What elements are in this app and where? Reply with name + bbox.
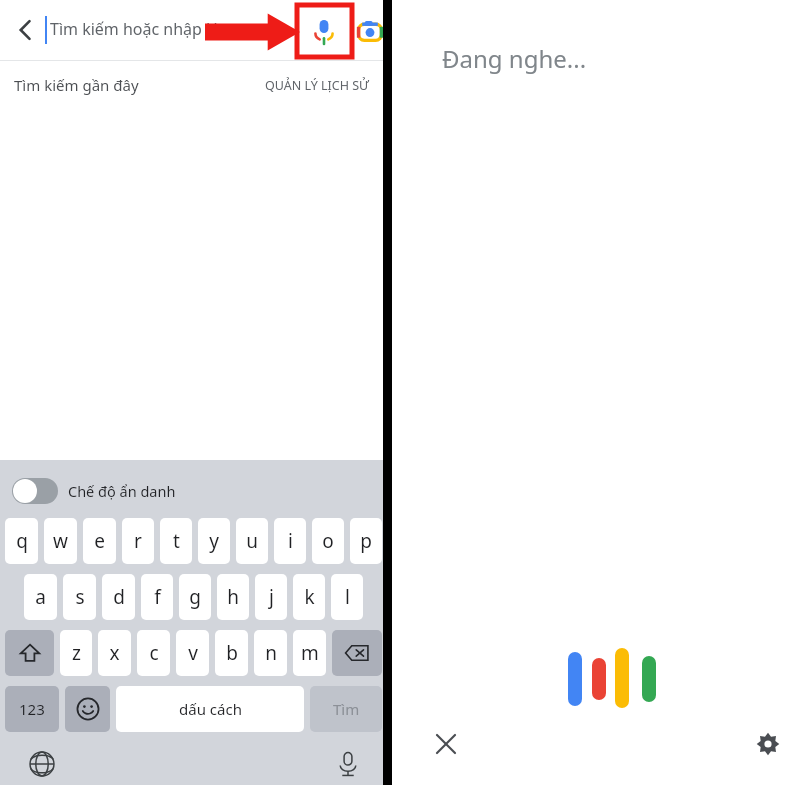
button[interactable]: 123 <box>5 686 59 732</box>
button[interactable]: b <box>215 630 248 676</box>
staticText: Chế độ ẩn danh <box>68 481 176 501</box>
button[interactable]: Backspace <box>332 630 382 676</box>
staticText: j <box>269 584 274 610</box>
staticText: q <box>16 528 28 554</box>
button[interactable]: h <box>217 574 249 620</box>
button[interactable]: Close <box>426 724 466 764</box>
button[interactable]: c <box>137 630 170 676</box>
button[interactable]: Back <box>6 10 46 50</box>
staticText: 123 <box>19 699 45 719</box>
button[interactable]: q <box>5 518 38 564</box>
button[interactable]: z <box>60 630 92 676</box>
button[interactable]: Shift <box>5 630 54 676</box>
button[interactable]: m <box>293 630 326 676</box>
button[interactable]: n <box>254 630 287 676</box>
staticText: z <box>72 640 81 666</box>
staticText: m <box>301 640 319 666</box>
staticText: u <box>246 528 258 554</box>
button[interactable]: dấu cách <box>116 686 304 732</box>
button[interactable]: Tìm <box>310 686 382 732</box>
staticText: t <box>173 528 180 554</box>
staticText: Tìm <box>333 699 360 719</box>
staticText: x <box>109 640 120 666</box>
staticText: w <box>53 528 68 554</box>
staticText: Tìm kiếm gần đây <box>14 75 139 95</box>
staticText: b <box>226 640 238 666</box>
button[interactable]: r <box>122 518 154 564</box>
button[interactable]: x <box>98 630 131 676</box>
staticText: l <box>345 584 350 610</box>
staticText: f <box>154 584 161 610</box>
button[interactable]: Emoji <box>65 686 110 732</box>
staticText: c <box>149 640 159 666</box>
staticText: n <box>265 640 277 666</box>
staticText: v <box>188 640 198 666</box>
button[interactable]: Chế độ ẩn danh <box>12 474 176 508</box>
staticText: r <box>134 528 142 554</box>
staticText: k <box>304 584 315 610</box>
button[interactable]: w <box>44 518 77 564</box>
staticText: h <box>227 584 239 610</box>
button[interactable]: t <box>160 518 192 564</box>
button[interactable]: Voice search <box>302 10 346 54</box>
button[interactable]: e <box>83 518 116 564</box>
button[interactable]: u <box>236 518 268 564</box>
staticText: dấu cách <box>179 699 242 719</box>
button[interactable]: s <box>63 574 96 620</box>
button[interactable]: Settings <box>748 724 788 764</box>
button[interactable]: d <box>102 574 135 620</box>
button[interactable]: f <box>141 574 173 620</box>
button[interactable]: Voice input <box>328 744 368 784</box>
button[interactable]: p <box>350 518 382 564</box>
staticText: p <box>360 528 372 554</box>
button[interactable]: o <box>312 518 344 564</box>
button[interactable]: l <box>331 574 363 620</box>
staticText: s <box>75 584 85 610</box>
staticText: d <box>113 584 125 610</box>
staticText: e <box>94 528 105 554</box>
button[interactable]: Google Lens <box>348 10 392 54</box>
staticText: i <box>288 528 293 554</box>
button[interactable]: v <box>176 630 209 676</box>
staticText: Tìm kiếm hoặc nhập U <box>50 18 218 40</box>
button[interactable]: g <box>179 574 211 620</box>
button[interactable]: QUẢN LÝ LỊCH SỬ <box>265 77 369 94</box>
staticText: o <box>322 528 334 554</box>
button[interactable]: Change language <box>22 744 62 784</box>
button[interactable]: j <box>255 574 287 620</box>
staticText: y <box>209 528 219 554</box>
button[interactable]: a <box>24 574 57 620</box>
button[interactable]: i <box>274 518 306 564</box>
button[interactable]: k <box>293 574 325 620</box>
staticText: a <box>35 584 46 610</box>
button[interactable]: y <box>198 518 230 564</box>
staticText: Đang nghe... <box>442 42 587 75</box>
staticText: g <box>189 584 201 610</box>
staticText: QUẢN LÝ LỊCH SỬ <box>265 77 369 94</box>
